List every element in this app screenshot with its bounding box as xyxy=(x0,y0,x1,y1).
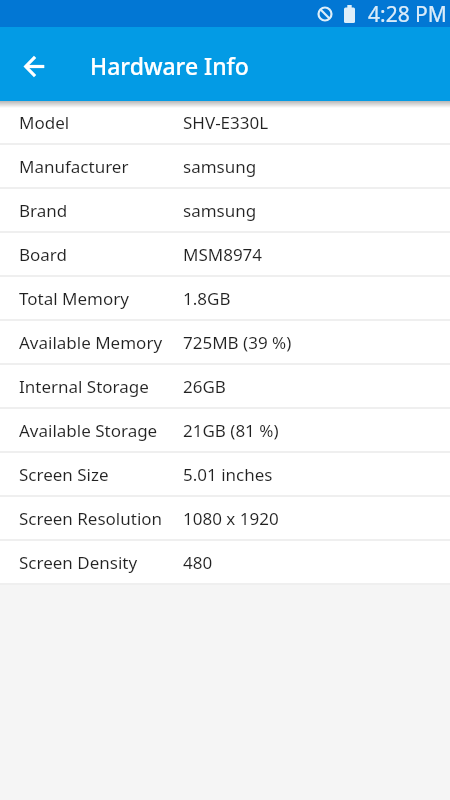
staticText: Available Memory xyxy=(19,331,163,354)
button[interactable]: Available Memory xyxy=(0,321,450,365)
staticText: Available Storage xyxy=(19,419,158,442)
button[interactable]: Screen Size xyxy=(0,453,450,497)
button[interactable]: Board xyxy=(0,233,450,277)
staticText: Brand xyxy=(19,199,68,222)
staticText: Total Memory xyxy=(19,287,129,310)
button[interactable] xyxy=(13,45,57,89)
staticText: SHV-E330L xyxy=(183,111,269,134)
staticText: Board xyxy=(19,243,68,266)
staticText: Screen Resolution xyxy=(19,507,163,530)
staticText: samsung xyxy=(183,199,257,222)
staticText: Screen Density xyxy=(19,551,138,574)
staticText: 725MB (39 %) xyxy=(183,331,292,354)
staticText: 5.01 inches xyxy=(183,463,273,486)
button[interactable]: Screen Resolution xyxy=(0,497,450,541)
staticText: 480 xyxy=(183,551,213,574)
staticText: 4:28 PM xyxy=(368,0,447,27)
staticText: Screen Size xyxy=(19,463,109,486)
staticText: Hardware Info xyxy=(90,50,249,81)
button[interactable]: Total Memory xyxy=(0,277,450,321)
button[interactable]: Model xyxy=(0,101,450,145)
button[interactable]: Manufacturer xyxy=(0,145,450,189)
button[interactable]: Screen Density xyxy=(0,541,450,585)
staticText: Model xyxy=(19,111,70,134)
staticText: samsung xyxy=(183,155,257,178)
staticText: 1.8GB xyxy=(183,287,231,310)
button[interactable]: Internal Storage xyxy=(0,365,450,409)
staticText: 1080 x 1920 xyxy=(183,507,279,530)
staticText: 26GB xyxy=(183,375,226,398)
staticText: Internal Storage xyxy=(19,375,149,398)
staticText: 21GB (81 %) xyxy=(183,419,279,442)
staticText: Manufacturer xyxy=(19,155,129,178)
button[interactable]: Brand xyxy=(0,189,450,233)
staticText: MSM8974 xyxy=(183,243,263,266)
button[interactable]: Available Storage xyxy=(0,409,450,453)
